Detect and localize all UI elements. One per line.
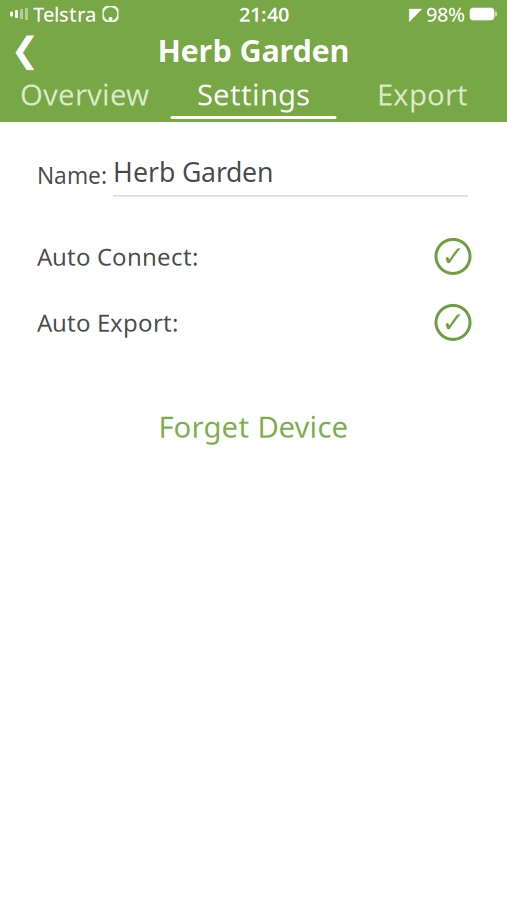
button[interactable]: Back <box>0 28 50 72</box>
staticText: Auto Connect: <box>37 240 198 272</box>
staticText: Herb Garden <box>113 154 273 189</box>
staticText: ❮ <box>10 30 39 70</box>
staticText: Telstra <box>33 1 96 27</box>
staticText: Auto Export: <box>37 306 178 338</box>
button[interactable]: Settings <box>169 72 338 122</box>
staticText: 98% <box>426 1 465 27</box>
staticText: Settings <box>197 74 310 113</box>
staticText: Herb Garden <box>157 30 349 70</box>
staticText: Overview <box>20 74 149 113</box>
staticText: ◤ <box>409 4 422 24</box>
button[interactable]: Export <box>338 72 507 122</box>
button[interactable]: Auto Export: enabled <box>431 300 475 344</box>
staticText: Forget Device <box>158 407 348 446</box>
staticText: Export <box>377 74 468 113</box>
staticText: ✓ <box>441 306 464 338</box>
staticText: 21:40 <box>239 1 289 27</box>
staticText: ✓ <box>441 240 464 272</box>
button[interactable]: Auto Connect: enabled <box>431 234 475 278</box>
staticText: Name: <box>37 160 107 190</box>
button[interactable]: Forget Device <box>0 404 507 448</box>
button[interactable]: Overview <box>0 72 169 122</box>
